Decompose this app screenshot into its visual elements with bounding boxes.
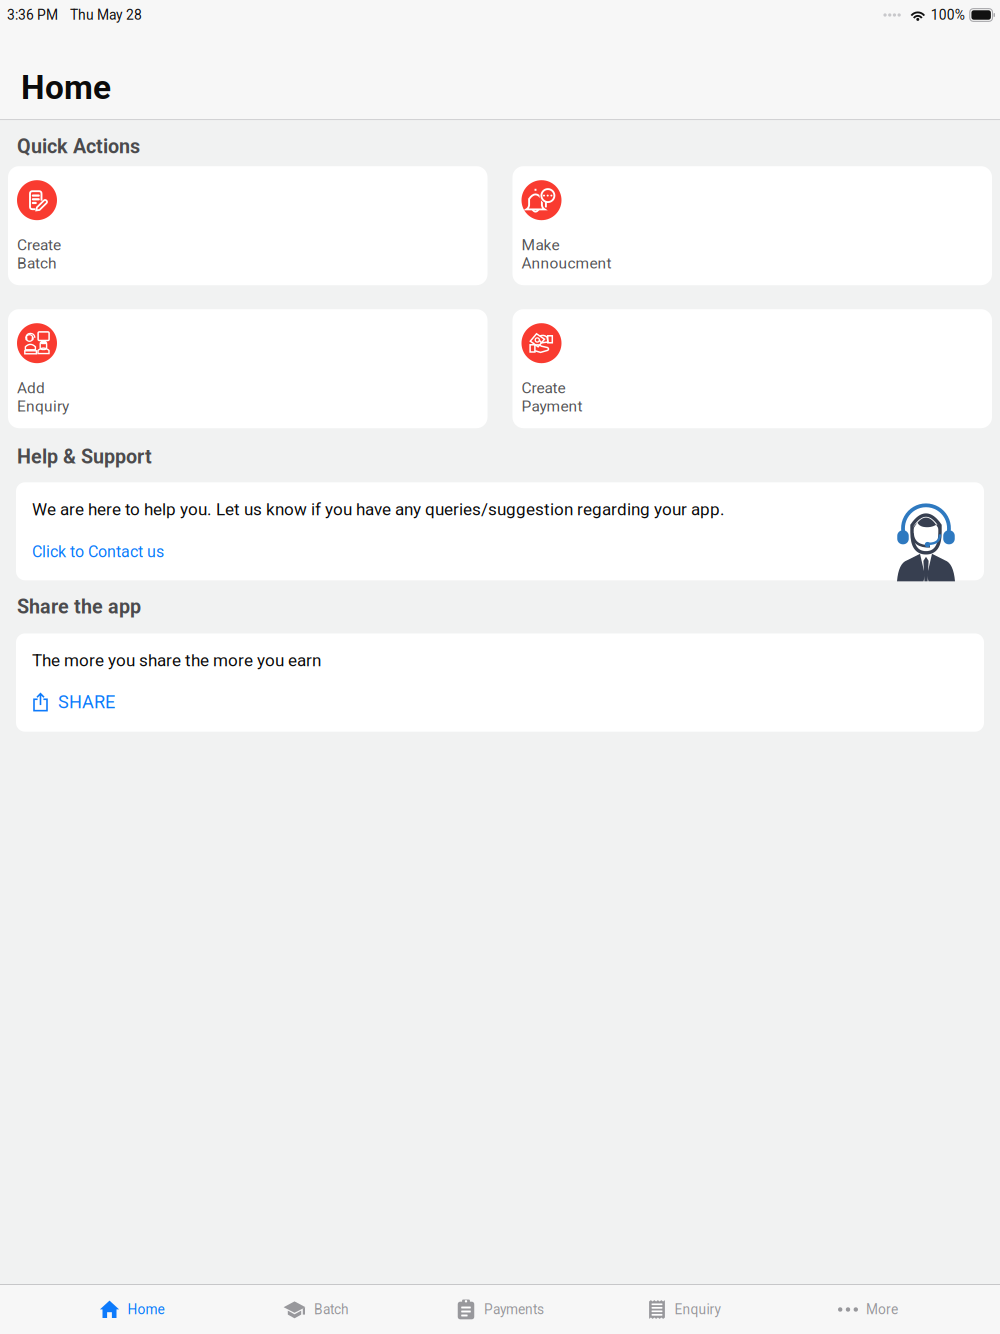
button[interactable]: Enquiry bbox=[592, 1284, 776, 1334]
staticText: Home bbox=[127, 1301, 164, 1318]
staticText: Share the app bbox=[17, 595, 141, 618]
button[interactable]: Batch bbox=[224, 1284, 408, 1334]
button[interactable]: Create bbox=[8, 166, 487, 285]
staticText: Create bbox=[17, 236, 61, 254]
staticText: Enquiry bbox=[674, 1301, 720, 1318]
staticText: Make bbox=[521, 236, 559, 254]
button[interactable]: Home bbox=[40, 1284, 224, 1334]
staticText: SHARE bbox=[58, 691, 115, 713]
button[interactable]: Add bbox=[8, 309, 487, 428]
staticText: Quick Actions bbox=[17, 135, 140, 158]
staticText: Batch bbox=[314, 1301, 349, 1318]
staticText: Enquiry bbox=[17, 397, 69, 415]
button[interactable]: Make bbox=[512, 166, 992, 285]
button[interactable]: Payments bbox=[408, 1284, 592, 1334]
button[interactable]: Click to Contact us bbox=[32, 542, 164, 561]
staticText: Thu May 28 bbox=[70, 7, 142, 23]
staticText: 3:36 PM bbox=[7, 7, 58, 23]
staticText: Add bbox=[17, 379, 45, 397]
button[interactable]: More bbox=[776, 1284, 960, 1334]
staticText: Batch bbox=[17, 254, 57, 272]
staticText: More bbox=[866, 1301, 898, 1318]
button[interactable]: SHARE bbox=[32, 691, 115, 713]
staticText: We are here to help you. Let us know if … bbox=[32, 499, 725, 519]
staticText: Payment bbox=[521, 397, 582, 415]
staticText: Help & Support bbox=[17, 445, 152, 468]
staticText: The more you share the more you earn bbox=[32, 650, 321, 670]
button[interactable]: Create bbox=[512, 309, 992, 428]
staticText: Payments bbox=[484, 1301, 544, 1318]
staticText: Create bbox=[521, 379, 565, 397]
staticText: Click to Contact us bbox=[32, 542, 164, 561]
staticText: 100% bbox=[931, 7, 965, 23]
staticText: Annoucment bbox=[521, 254, 611, 272]
staticText: Home bbox=[21, 68, 111, 107]
